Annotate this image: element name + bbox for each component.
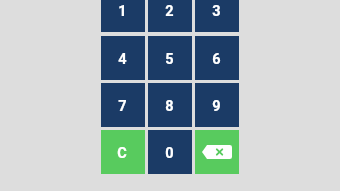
- staticText: 5: [165, 51, 174, 68]
- staticText: 0: [165, 145, 174, 162]
- staticText: 9: [212, 98, 221, 115]
- button[interactable]: 1: [101, 0, 145, 32]
- staticText: 7: [118, 98, 127, 115]
- staticText: 8: [165, 98, 174, 115]
- button[interactable]: 8: [148, 83, 192, 127]
- button[interactable]: 9: [195, 83, 239, 127]
- staticText: 2: [165, 3, 174, 20]
- staticText: 3: [212, 3, 221, 20]
- button[interactable]: C: [101, 130, 145, 174]
- button[interactable]: 5: [148, 36, 192, 80]
- button[interactable]: 2: [148, 0, 192, 32]
- button[interactable]: 4: [101, 36, 145, 80]
- staticText: 6: [212, 51, 221, 68]
- button[interactable]: 7: [101, 83, 145, 127]
- button[interactable]: Backspace: [195, 130, 239, 174]
- staticText: 1: [118, 3, 127, 20]
- button[interactable]: 6: [195, 36, 239, 80]
- staticText: C: [117, 145, 127, 162]
- staticText: 4: [118, 51, 127, 68]
- button[interactable]: 0: [148, 130, 192, 174]
- button[interactable]: 3: [195, 0, 239, 32]
